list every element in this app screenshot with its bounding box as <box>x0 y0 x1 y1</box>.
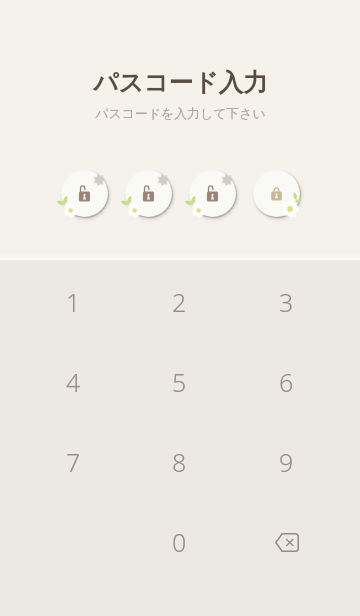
button[interactable]: 5 <box>126 342 233 422</box>
staticText: 2 <box>172 285 187 319</box>
staticText: パスコードを入力して下さい <box>95 106 266 122</box>
other: Passcode entry progress <box>0 166 360 221</box>
button[interactable]: 4 <box>20 342 126 422</box>
staticText: パスコード入力 <box>93 67 268 98</box>
button[interactable]: 6 <box>233 342 340 422</box>
staticText: 7 <box>66 445 81 479</box>
button[interactable]: 1 <box>20 262 126 342</box>
button[interactable]: 9 <box>233 422 340 502</box>
staticText: 4 <box>66 365 81 399</box>
button[interactable]: Backspace <box>233 502 340 582</box>
button[interactable]: 3 <box>233 262 340 342</box>
staticText: 5 <box>172 365 187 399</box>
other: Backspace <box>269 527 305 557</box>
button[interactable]: 2 <box>126 262 233 342</box>
button[interactable]: 7 <box>20 422 126 502</box>
staticText: 0 <box>172 525 187 559</box>
staticText: 8 <box>172 445 187 479</box>
staticText: 3 <box>279 285 294 319</box>
button[interactable]: 8 <box>126 422 233 502</box>
button[interactable]: 0 <box>126 502 233 582</box>
staticText: 9 <box>279 445 294 479</box>
staticText: 1 <box>66 285 81 319</box>
staticText: 6 <box>279 365 294 399</box>
